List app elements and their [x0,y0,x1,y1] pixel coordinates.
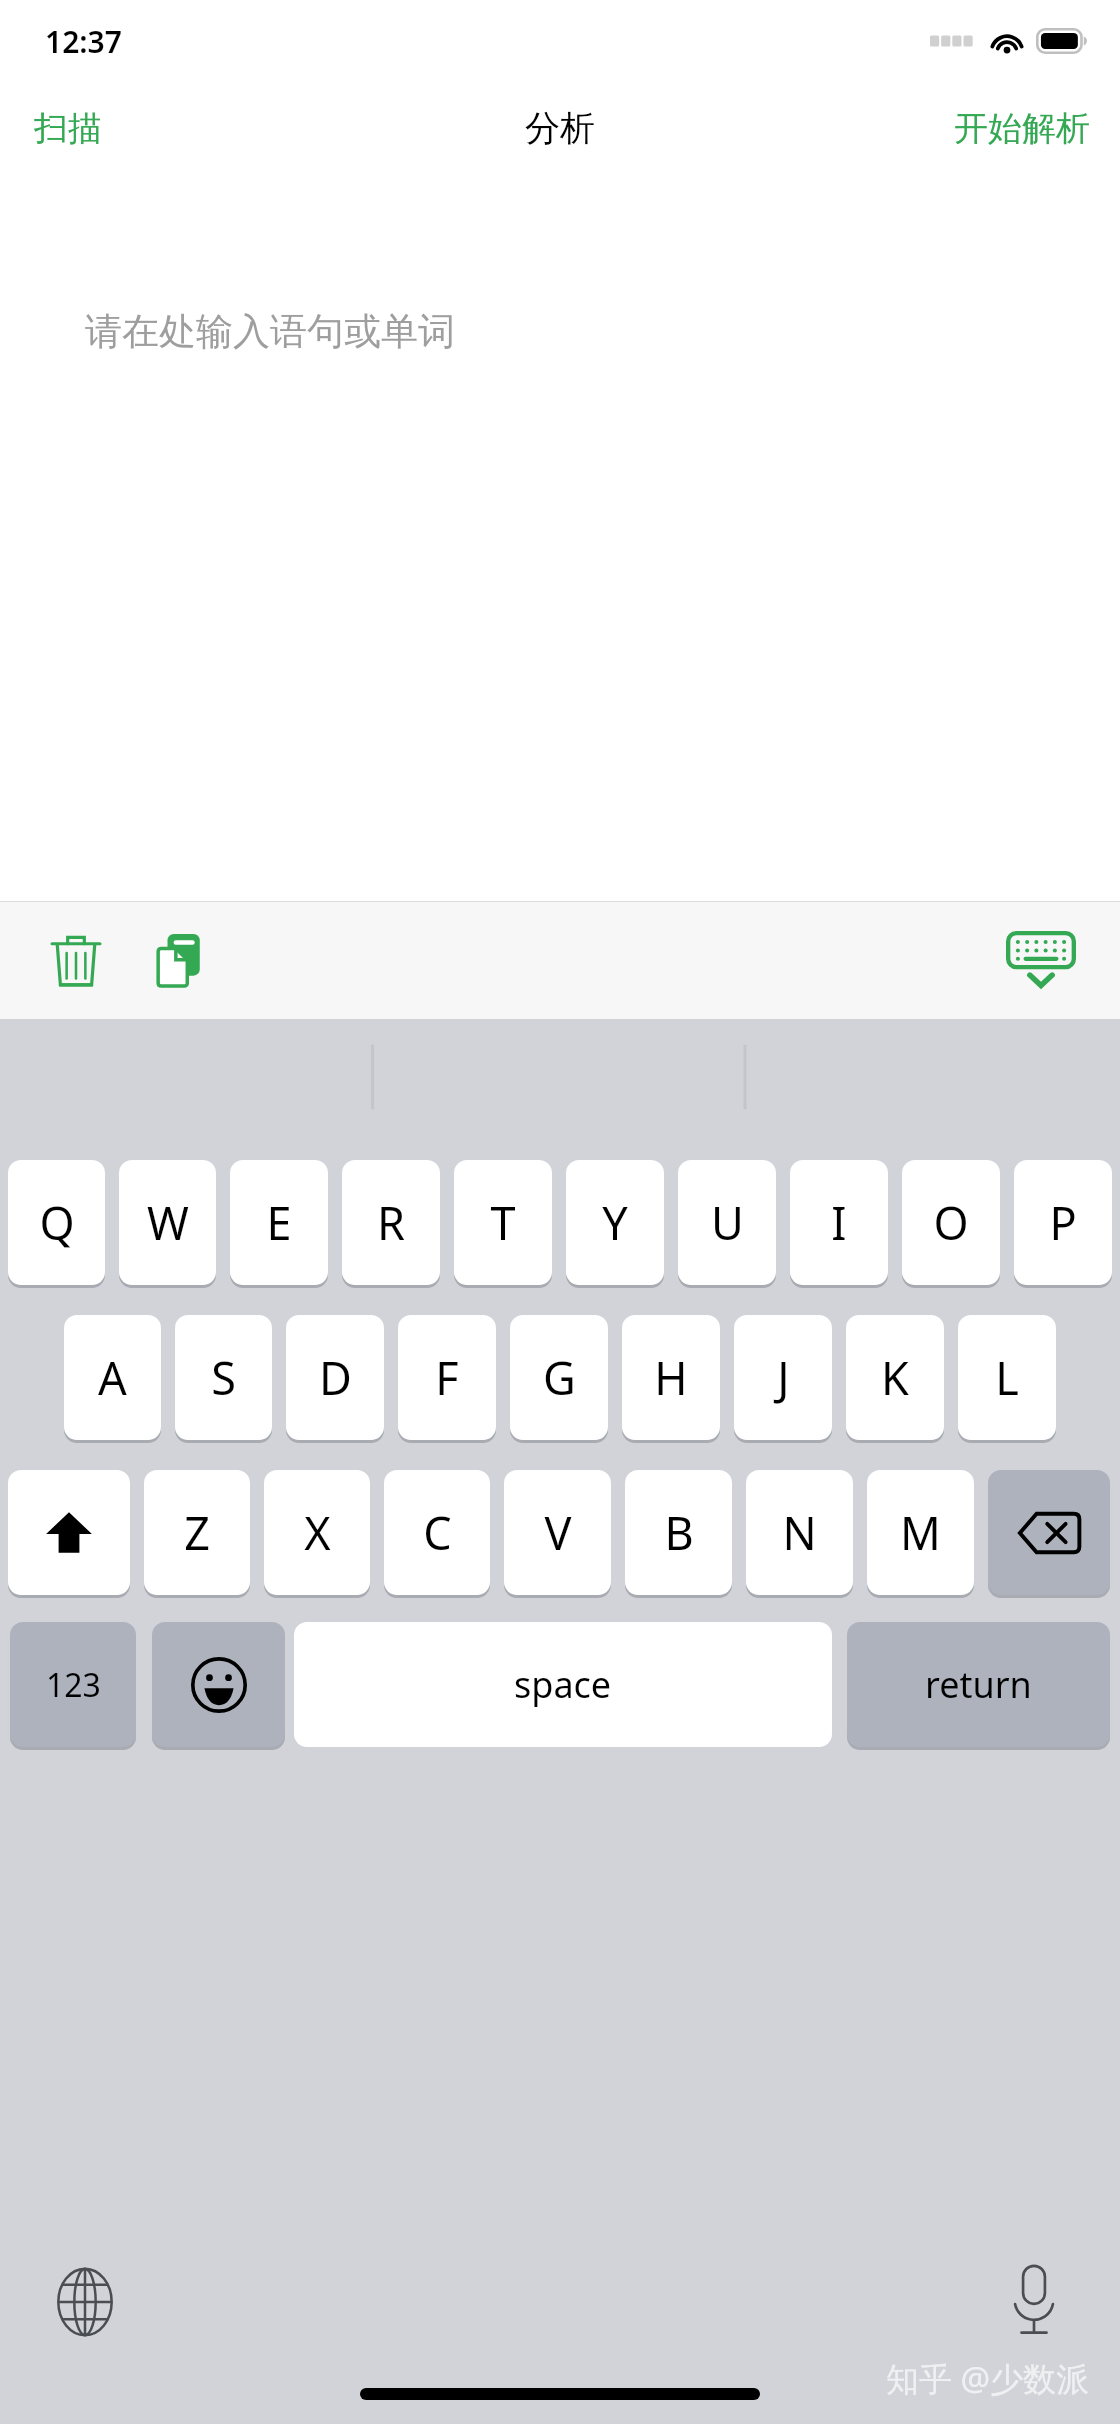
button[interactable]: F [398,1315,496,1440]
button[interactable]: G [510,1315,608,1440]
button[interactable]: Copy [140,917,220,1003]
button[interactable]: Dictation [1000,2254,1068,2346]
staticText: I [831,1192,847,1253]
button[interactable]: W [119,1160,216,1285]
staticText: W [147,1192,189,1253]
button[interactable]: P [1014,1160,1112,1285]
staticText: 123 [46,1663,101,1707]
button[interactable]: R [342,1160,440,1285]
staticText: E [266,1192,292,1253]
staticText: Z [184,1502,210,1563]
staticText: 请在处输入语句或单词 [85,308,455,355]
button[interactable]: C [384,1470,490,1595]
staticText: return [925,1660,1032,1709]
button[interactable]: N [746,1470,853,1595]
button[interactable]: M [867,1470,974,1595]
staticText: F [435,1347,459,1408]
button[interactable]: 扫描 [0,89,136,168]
staticText: 扫描 [34,107,102,150]
button[interactable]: Next keyboard [48,2258,122,2346]
staticText: 分析 [525,106,595,150]
staticText: J [777,1347,790,1408]
button[interactable]: Emoji [152,1622,285,1747]
button[interactable]: X [264,1470,370,1595]
button[interactable]: Q [8,1160,105,1285]
button[interactable]: return [847,1622,1110,1747]
staticText: L [995,1347,1019,1408]
staticText: S [211,1347,236,1408]
button[interactable]: D [286,1315,384,1440]
button[interactable]: A [64,1315,161,1440]
staticText: P [1049,1192,1077,1253]
staticText: H [654,1347,688,1408]
button[interactable]: 请在处输入语句或单词 [0,178,1120,901]
staticText: space [514,1660,612,1709]
button[interactable]: Shift [8,1470,130,1595]
button[interactable]: T [454,1160,552,1285]
staticText: G [543,1347,576,1408]
staticText: M [900,1502,941,1563]
staticText: A [98,1347,127,1408]
staticText: T [490,1192,516,1253]
button[interactable]: Backspace [988,1470,1110,1595]
button[interactable]: H [622,1315,720,1440]
staticText: X [304,1502,331,1563]
staticText: 12:37 [45,21,122,62]
staticText: R [377,1192,405,1253]
staticText: 开始解析 [954,107,1090,150]
button[interactable]: J [734,1315,832,1440]
button[interactable]: U [678,1160,776,1285]
button[interactable]: 123 [10,1622,136,1747]
staticText: N [782,1502,817,1563]
staticText: Y [602,1192,628,1253]
button[interactable]: V [504,1470,611,1595]
button[interactable]: Clear text [36,917,116,1003]
staticText: K [881,1347,909,1408]
button[interactable]: S [175,1315,272,1440]
staticText: C [423,1502,452,1563]
staticText: U [711,1192,744,1253]
staticText: O [933,1192,969,1253]
staticText: B [664,1502,694,1563]
button[interactable]: space [294,1622,832,1747]
button[interactable]: Z [144,1470,250,1595]
button[interactable]: K [846,1315,944,1440]
button[interactable]: L [958,1315,1056,1440]
button[interactable]: Y [566,1160,664,1285]
button[interactable]: 开始解析 [924,89,1120,168]
staticText: Q [39,1192,75,1253]
staticText: V [544,1502,572,1563]
staticText: D [319,1347,352,1408]
button[interactable]: I [790,1160,888,1285]
button[interactable]: E [230,1160,328,1285]
button[interactable]: B [625,1470,732,1595]
button[interactable]: Hide keyboard [996,921,1086,999]
staticText: 知乎 @少数派 [886,2356,1090,2401]
button[interactable]: O [902,1160,1000,1285]
